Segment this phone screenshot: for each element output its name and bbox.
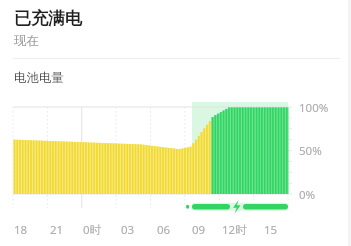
staticText: 18 bbox=[14, 222, 28, 238]
staticText: 0% bbox=[299, 187, 316, 203]
staticText: 15 bbox=[264, 222, 278, 238]
staticText: 06 bbox=[157, 222, 171, 238]
staticText: 100% bbox=[299, 100, 329, 116]
button[interactable]: 电池电量图表 bbox=[0, 0, 351, 246]
staticText: 50% bbox=[299, 143, 322, 159]
staticText: 0时 bbox=[83, 222, 102, 238]
staticText: 已充满电 bbox=[14, 8, 82, 29]
staticText: 12时 bbox=[222, 222, 247, 238]
staticText: 03 bbox=[121, 222, 135, 238]
staticText: 09 bbox=[192, 222, 206, 238]
staticText: 电池电量 bbox=[14, 70, 64, 86]
button[interactable]: 已充满电 bbox=[0, 0, 351, 49]
staticText: 21 bbox=[50, 222, 64, 238]
staticText: 现在 bbox=[14, 33, 39, 49]
